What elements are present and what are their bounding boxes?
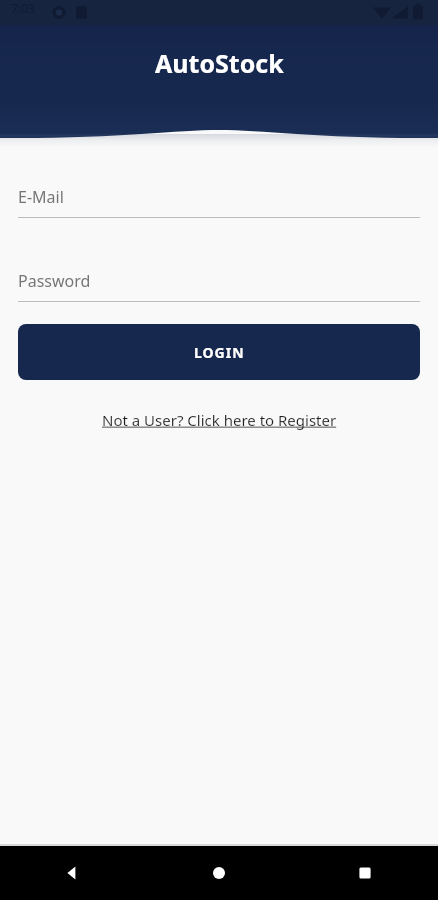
button[interactable]: Not a User? Click here to Register [96,406,343,434]
staticText: AutoStock [155,46,284,80]
staticText: E-Mail [18,186,64,208]
staticText: 7:03 [11,0,35,16]
button[interactable]: LOGIN [18,324,420,380]
button[interactable]: E-Mail [18,183,420,210]
button[interactable]: Back [0,846,146,900]
staticText: Not a User? Click here to Register [102,410,337,430]
staticText: Password [18,270,91,292]
button[interactable]: Password [18,267,420,294]
button[interactable]: Recent apps [292,846,438,900]
button[interactable]: Home [146,846,292,900]
staticText: LOGIN [194,343,245,362]
